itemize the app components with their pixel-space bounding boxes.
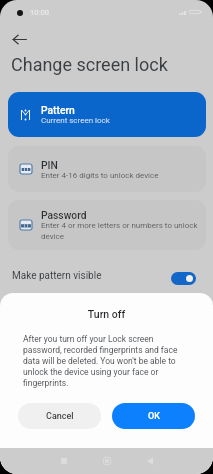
staticText: Cancel: [46, 411, 74, 422]
staticText: PIN: [41, 159, 58, 171]
staticText: Pattern: [41, 104, 75, 116]
staticText: After you turn off your Lock screen pass…: [23, 334, 189, 388]
button[interactable]: Cancel: [18, 403, 101, 429]
button[interactable]: PIN: [8, 146, 206, 192]
staticText: 10:00: [30, 8, 50, 17]
staticText: OK: [148, 411, 160, 422]
staticText: Change screen lock: [11, 54, 168, 75]
staticText: Enter 4 or more letters or numbers to un…: [41, 221, 200, 241]
button[interactable]: Password: [8, 200, 206, 250]
button[interactable]: Make pattern visible: [0, 266, 213, 290]
staticText: Turn off: [0, 308, 213, 320]
button[interactable]: Back: [5, 25, 33, 53]
staticText: Enter 4-16 digits to unlock device: [41, 171, 159, 180]
staticText: Current screen lock: [41, 116, 110, 125]
staticText: Password: [41, 209, 87, 221]
button[interactable]: OK: [112, 403, 195, 429]
staticText: Make pattern visible: [12, 270, 102, 282]
button[interactable]: Pattern: [8, 92, 206, 137]
